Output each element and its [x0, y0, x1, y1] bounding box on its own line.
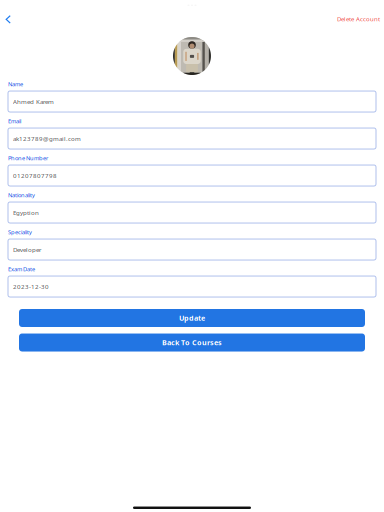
staticText: Egyption [13, 208, 39, 217]
staticText: Developer [13, 245, 42, 254]
staticText: 2023-12-30 [13, 282, 49, 291]
staticText: Back To Courses [162, 338, 222, 347]
staticText: Email [8, 117, 21, 125]
button[interactable]: Ahmed Karem [8, 91, 376, 112]
button[interactable]: Back To Courses [19, 333, 365, 351]
button[interactable]: ak123789@gmail.com [8, 128, 376, 149]
staticText: Phone Number [8, 154, 48, 162]
button[interactable]: Egyption [8, 202, 376, 223]
button[interactable]: 2023-12-30 [8, 276, 376, 297]
staticText: Speciality [8, 228, 32, 236]
button[interactable]: Update [19, 309, 365, 327]
staticText: Delete Account [337, 15, 380, 23]
staticText: 01207807798 [13, 171, 57, 180]
button[interactable]: Developer [8, 239, 376, 260]
staticText: Exam Date [8, 265, 35, 273]
staticText: Name [8, 80, 23, 88]
button[interactable]: 01207807798 [8, 165, 376, 186]
staticText: Nationality [8, 191, 35, 199]
staticText: ak123789@gmail.com [13, 134, 81, 143]
staticText: Update [179, 313, 205, 323]
button[interactable]: Back [0, 0, 18, 25]
staticText: Ahmed Karem [13, 97, 54, 106]
button[interactable]: Delete Account [337, 0, 384, 25]
